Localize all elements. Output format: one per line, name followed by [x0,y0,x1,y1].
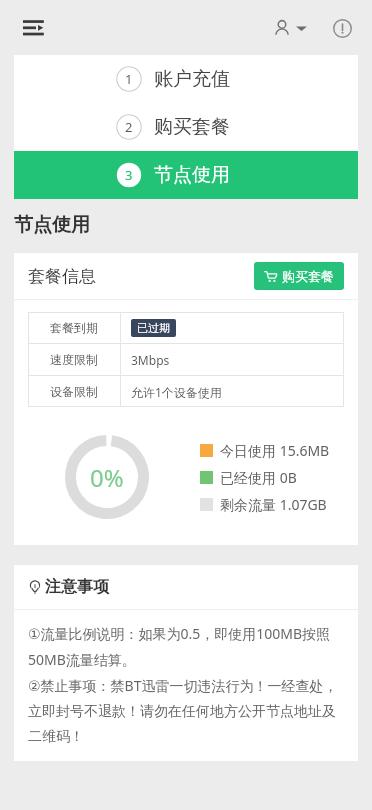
staticText: 今日使用 15.6MB [220,441,330,460]
button[interactable]: 购买套餐 [254,262,344,290]
staticText: 节点使用 [154,163,230,187]
staticText: 速度限制 [50,352,98,367]
staticText: 注意事项 [45,577,109,597]
staticText: 1 [125,70,133,88]
staticText: 已经使用 0B [220,468,297,487]
button[interactable]: 2 [14,103,358,151]
staticText: 购买套餐 [154,115,230,139]
staticText: 设备限制 [50,384,98,399]
staticText: 账户充值 [154,67,230,91]
staticText: 0% [90,461,124,494]
staticText: 购买套餐 [282,268,334,284]
staticText: 套餐信息 [28,266,96,287]
staticText: 2 [125,118,133,136]
staticText: 3 [125,166,133,184]
staticText: 套餐到期 [50,320,98,335]
staticText: 允许1个设备使用 [131,384,222,400]
button[interactable]: Info [327,13,358,44]
button[interactable]: Account [267,11,313,45]
button[interactable]: Menu [16,8,56,48]
button[interactable]: 1 [14,55,358,103]
staticText: 已过期 [137,321,170,335]
staticText: 节点使用 [14,213,90,237]
staticText: 3Mbps [131,352,170,368]
staticText: 剩余流量 1.07GB [220,495,327,514]
staticText: ①流量比例说明：如果为0.5，即使用100MB按照50MB流量结算。 ②禁止事项… [28,624,344,745]
button[interactable]: 3 [14,151,358,199]
